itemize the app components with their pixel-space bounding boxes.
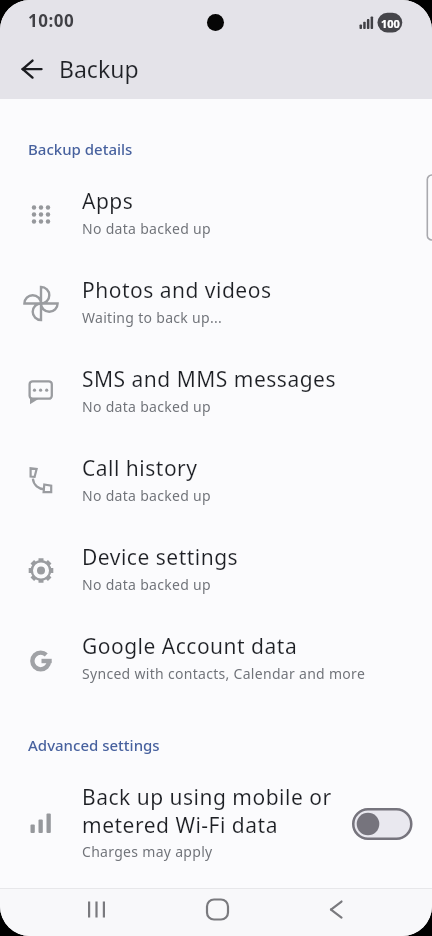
- button[interactable]: Google Account data: [0, 615, 432, 704]
- button[interactable]: [68, 888, 126, 936]
- staticText: No data backed up: [82, 397, 211, 416]
- staticText: Device settings: [82, 543, 239, 572]
- staticText: No data backed up: [82, 486, 211, 505]
- button[interactable]: Apps: [0, 170, 432, 259]
- button[interactable]: Back up using mobile or metered Wi-Fi da…: [0, 774, 432, 874]
- staticText: Charges may apply: [82, 842, 213, 861]
- staticText: Call history: [82, 454, 198, 483]
- staticText: Synced with contacts, Calendar and more: [82, 664, 366, 683]
- staticText: 10:00: [28, 9, 75, 32]
- staticText: No data backed up: [82, 575, 211, 594]
- button[interactable]: Call history: [0, 437, 432, 526]
- staticText: Apps: [82, 187, 134, 216]
- staticText: Photos and videos: [82, 276, 272, 305]
- staticText: No data backed up: [82, 219, 211, 238]
- staticText: Backup: [59, 53, 139, 84]
- button[interactable]: SMS and MMS messages: [0, 348, 432, 437]
- staticText: 100: [381, 16, 400, 31]
- staticText: Backup details: [28, 139, 133, 159]
- button[interactable]: [307, 888, 365, 936]
- staticText: Waiting to back up...: [82, 308, 223, 327]
- staticText: Google Account data: [82, 632, 298, 661]
- button[interactable]: Device settings: [0, 526, 432, 615]
- staticText: Back up using mobile or metered Wi-Fi da…: [82, 783, 332, 839]
- button[interactable]: Photos and videos: [0, 259, 432, 348]
- staticText: SMS and MMS messages: [82, 365, 336, 394]
- staticText: Advanced settings: [28, 735, 160, 755]
- button[interactable]: [8, 45, 56, 93]
- button[interactable]: [188, 888, 246, 936]
